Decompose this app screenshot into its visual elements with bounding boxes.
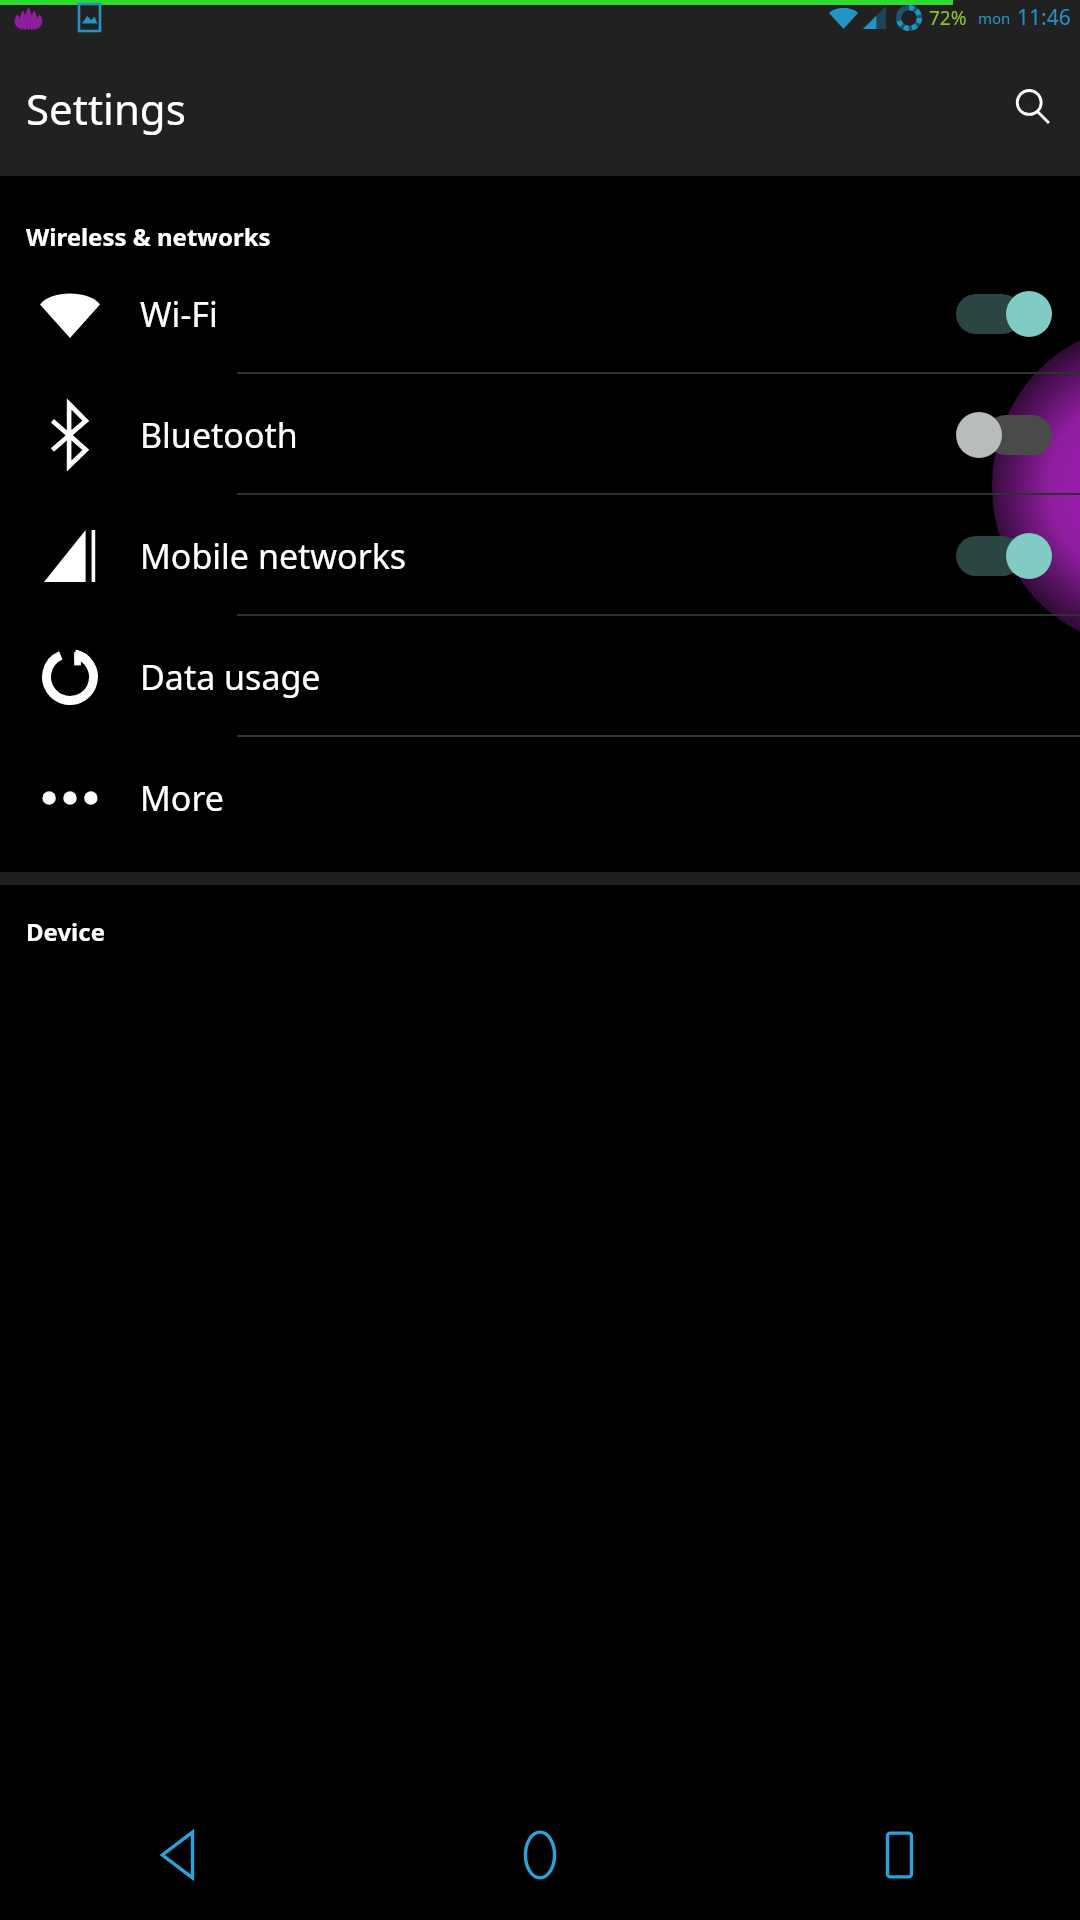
button[interactable]: Home [360, 1790, 720, 1920]
staticText: Data usage [140, 654, 321, 700]
button[interactable]: Back [0, 1790, 360, 1920]
staticText: 11:46 [1017, 3, 1071, 32]
staticText: 72% [929, 5, 967, 31]
staticText: Settings [26, 80, 186, 137]
staticText: More [140, 775, 224, 821]
button[interactable]: Mobile networks [0, 495, 1080, 616]
button[interactable]: Data usage [0, 616, 1080, 737]
staticText: Bluetooth [140, 412, 298, 458]
staticText: Device [26, 915, 106, 948]
button[interactable]: More [0, 737, 1080, 858]
button[interactable]: Search [1004, 78, 1062, 136]
button[interactable]: Bluetooth [0, 374, 1080, 495]
staticText: Wireless & networks [26, 220, 271, 253]
button[interactable]: Wi-Fi [0, 253, 1080, 374]
button[interactable]: Recent apps [720, 1790, 1080, 1920]
staticText: Wi-Fi [140, 291, 218, 337]
staticText: Mobile networks [140, 533, 407, 579]
staticText: mon [978, 8, 1011, 28]
